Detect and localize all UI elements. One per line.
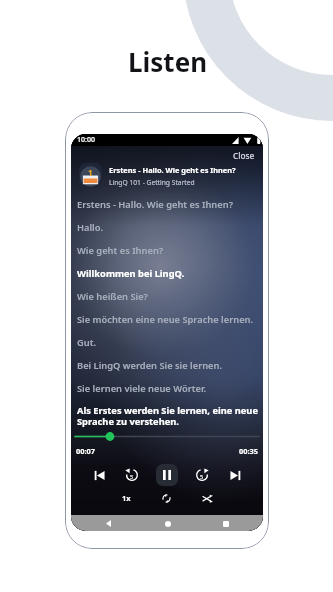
button[interactable]: 1x [118, 490, 134, 506]
button[interactable]: Hallo. [77, 216, 259, 239]
button[interactable]: Shuffle [198, 489, 216, 507]
button[interactable]: Home [161, 517, 174, 530]
staticText: 1 [88, 167, 93, 178]
staticText: Willkommen bei LingQ. [77, 267, 185, 280]
button[interactable]: 1 [79, 163, 236, 188]
staticText: LingQ 101 - Getting Started [109, 178, 195, 187]
staticText: Hallo. [77, 221, 104, 234]
button[interactable]: Wie heißen Sie? [77, 285, 259, 308]
staticText: Sie lernen viele neue Wörter. [77, 382, 206, 395]
staticText: Erstens - Hallo. Wie geht es Ihnen? [109, 165, 236, 175]
button[interactable]: Pause [156, 464, 178, 486]
button[interactable]: Erstens - Hallo. Wie geht es Ihnen? [77, 193, 259, 216]
button[interactable]: Gut. [77, 331, 259, 354]
button[interactable]: Sie lernen viele neue Wörter. [77, 377, 259, 400]
staticText: 00:35 [239, 446, 258, 456]
button[interactable]: Next track [226, 466, 244, 484]
button[interactable]: Rewind 5 seconds [123, 466, 141, 484]
staticText: 00:07 [76, 446, 95, 456]
staticText: Erstens - Hallo. Wie geht es Ihnen? [77, 198, 233, 211]
button[interactable]: Recent apps [219, 517, 232, 530]
staticText: 5 [200, 473, 204, 480]
staticText: Wie heißen Sie? [77, 290, 148, 303]
button[interactable] [75, 431, 259, 442]
button[interactable]: Forward 5 seconds [193, 466, 211, 484]
button[interactable]: Bei LingQ werden Sie sie lernen. [77, 354, 259, 377]
button[interactable]: Repeat [157, 489, 175, 507]
staticText: Listen [128, 44, 208, 79]
button[interactable]: Willkommen bei LingQ. [77, 262, 259, 285]
staticText: Gut. [77, 336, 97, 349]
staticText: 10:00 [77, 135, 95, 145]
button[interactable]: Als Erstes werden Sie lernen, eine neue … [77, 400, 259, 431]
staticText: Als Erstes werden Sie lernen, eine neue … [77, 404, 259, 428]
staticText: 5 [130, 473, 134, 480]
button[interactable]: Wie geht es Ihnen? [77, 239, 259, 262]
button[interactable]: Back [102, 517, 115, 530]
staticText: Sie möchten eine neue Sprache lernen. [77, 313, 254, 326]
button[interactable]: Close [223, 148, 263, 163]
staticText: Bei LingQ werden Sie sie lernen. [77, 359, 223, 372]
staticText: 1x [122, 493, 131, 503]
button[interactable]: Previous track [90, 466, 108, 484]
staticText: Wie geht es Ihnen? [77, 244, 164, 257]
button[interactable]: Sie möchten eine neue Sprache lernen. [77, 308, 259, 331]
